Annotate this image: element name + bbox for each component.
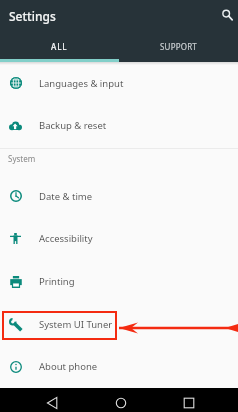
staticText: SUPPORT: [160, 41, 197, 52]
button[interactable]: ALL: [0, 31, 119, 62]
staticText: Settings: [9, 8, 56, 24]
button[interactable]: Accessibility: [0, 217, 238, 260]
button[interactable]: Recents: [177, 391, 200, 412]
button[interactable]: Backup & reset: [0, 104, 238, 147]
staticText: Printing: [39, 275, 75, 288]
button[interactable]: About phone: [0, 345, 238, 388]
button[interactable]: Home: [109, 391, 132, 412]
staticText: Accessibility: [39, 232, 93, 245]
staticText: Backup & reset: [39, 119, 107, 132]
staticText: System: [8, 153, 36, 164]
staticText: System UI Tuner: [39, 318, 113, 331]
button[interactable]: System UI Tuner: [0, 303, 238, 345]
staticText: About phone: [39, 360, 98, 373]
button[interactable]: Search: [212, 5, 234, 27]
button[interactable]: Printing: [0, 260, 238, 303]
button[interactable]: Date & time: [0, 175, 238, 217]
staticText: Languages & input: [39, 77, 124, 90]
button[interactable]: SUPPORT: [119, 31, 238, 62]
staticText: Date & time: [39, 190, 93, 203]
button[interactable]: Languages & input: [0, 62, 238, 104]
staticText: ALL: [51, 41, 68, 52]
button[interactable]: Back: [40, 391, 63, 412]
